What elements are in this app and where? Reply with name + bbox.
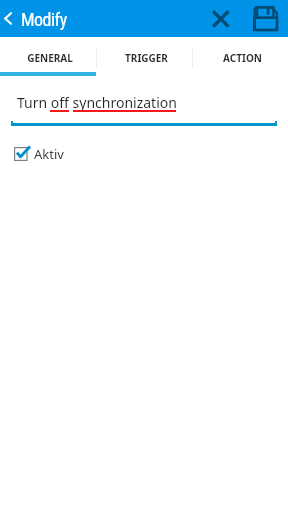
button[interactable]: Save — [248, 0, 286, 37]
button[interactable]: Back — [0, 0, 22, 37]
staticText: TRIGGER — [125, 51, 168, 65]
button[interactable]: Aktiv — [0, 136, 288, 164]
button[interactable]: Discard — [206, 0, 234, 37]
button[interactable]: GENERAL — [0, 37, 96, 72]
button[interactable]: TRIGGER — [96, 37, 192, 72]
button[interactable]: Modify — [21, 0, 141, 37]
staticText: Modify — [21, 9, 67, 30]
staticText: Turn off synchronization — [17, 93, 177, 112]
staticText: ACTION — [223, 51, 262, 65]
button[interactable]: ACTION — [192, 37, 288, 72]
staticText: Aktiv — [34, 145, 64, 163]
staticText: GENERAL — [27, 51, 73, 65]
button[interactable]: Turn off synchronization — [11, 84, 277, 126]
